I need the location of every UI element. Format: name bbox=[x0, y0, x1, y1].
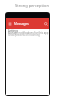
staticText: Messages bbox=[14, 22, 29, 26]
staticText: Manage notifications for this app bbox=[8, 31, 49, 35]
button[interactable]: Navigate up bbox=[6, 20, 13, 27]
staticText: Strong perception bbox=[0, 3, 64, 8]
button[interactable]: Settings bbox=[6, 29, 49, 95]
staticText: Show preview of incoming messages on the… bbox=[8, 33, 50, 37]
staticText: Settings bbox=[8, 29, 18, 33]
button[interactable]: Search bbox=[42, 20, 49, 27]
